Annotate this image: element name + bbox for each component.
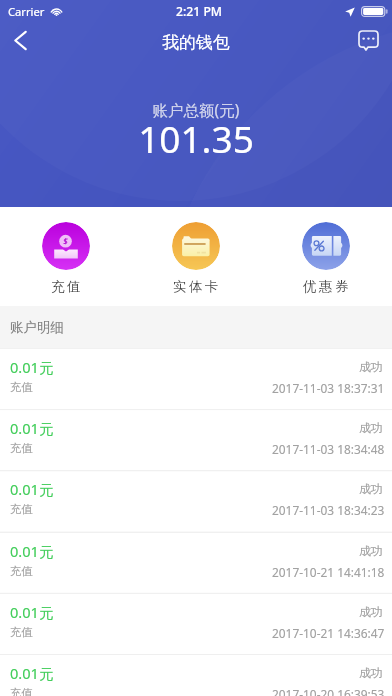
staticText: Carrier [8, 4, 45, 19]
button[interactable]: 0.01元 [0, 593, 392, 654]
staticText: 成功 [359, 360, 383, 375]
staticText: 成功 [359, 544, 383, 559]
staticText: 101.35 [0, 113, 392, 163]
staticText: 账户明细 [10, 319, 64, 336]
staticText: 充值 [10, 502, 33, 516]
staticText: 0.01元 [10, 602, 54, 622]
button[interactable]: 实体卡 [156, 207, 236, 296]
staticText: 充值 [10, 686, 33, 696]
staticText: 0.01元 [10, 541, 54, 561]
button[interactable]: 优惠券 [286, 207, 366, 296]
staticText: 充值 [10, 380, 33, 394]
staticText: 2017-11-03 18:37:31 [272, 380, 385, 396]
button[interactable]: 0.01元 [0, 654, 392, 696]
staticText: 0.01元 [10, 479, 54, 499]
staticText: 0.01元 [10, 357, 54, 377]
staticText: 充值 [10, 625, 33, 639]
staticText: 0.01元 [10, 418, 54, 438]
button[interactable]: 0.01元 [0, 470, 392, 531]
staticText: 成功 [359, 666, 383, 681]
staticText: 实体卡 [173, 278, 221, 295]
staticText: 2017-11-03 18:34:23 [272, 502, 385, 518]
button[interactable]: 充值 [26, 207, 106, 296]
staticText: 优惠券 [303, 278, 351, 295]
staticText: 充值 [10, 441, 33, 455]
button[interactable]: 0.01元 [0, 532, 392, 593]
staticText: 2017-11-03 18:34:48 [272, 441, 385, 457]
staticText: 2017-10-21 14:36:47 [272, 625, 385, 641]
staticText: 账户总额(元) [0, 99, 392, 120]
button[interactable]: 0.01元 [0, 348, 392, 409]
button[interactable]: 0.01元 [0, 409, 392, 470]
staticText: 成功 [359, 421, 383, 436]
button[interactable]: Messages [348, 20, 388, 60]
staticText: 0.01元 [10, 663, 54, 683]
button[interactable]: Back [0, 20, 40, 60]
staticText: 我的钱包 [162, 32, 230, 53]
staticText: 2017-10-20 16:39:53 [272, 686, 385, 696]
staticText: 2017-10-21 14:41:18 [272, 564, 385, 580]
staticText: 2:21 PM [176, 3, 223, 20]
staticText: 成功 [359, 482, 383, 497]
staticText: 充值 [51, 278, 83, 295]
staticText: 充值 [10, 564, 33, 578]
staticText: 成功 [359, 605, 383, 620]
